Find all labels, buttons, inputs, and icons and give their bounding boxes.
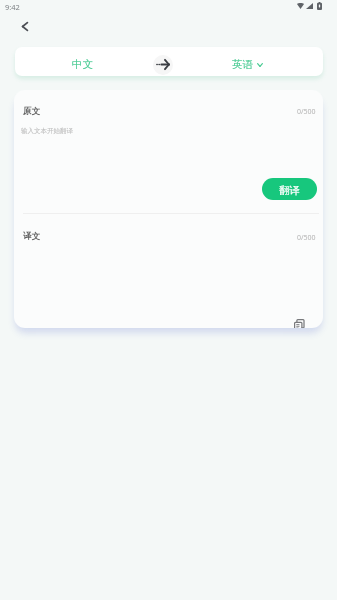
- button[interactable]: 中文: [58, 47, 106, 76]
- button[interactable]: Swap languages: [153, 55, 173, 75]
- button[interactable]: Copy: [289, 314, 308, 328]
- staticText: 翻译: [279, 184, 300, 197]
- button[interactable]: 翻译: [262, 178, 317, 200]
- staticText: 输入文本开始翻译: [21, 127, 73, 135]
- staticText: 0/500: [297, 233, 316, 243]
- staticText: 英语: [232, 58, 253, 71]
- staticText: 译文: [23, 231, 40, 242]
- staticText: 9:42: [5, 2, 20, 12]
- button[interactable]: Back: [12, 14, 37, 39]
- staticText: 中文: [72, 58, 93, 71]
- staticText: 原文: [23, 106, 40, 117]
- staticText: 0/500: [297, 107, 316, 117]
- button[interactable]: 英语: [212, 47, 282, 76]
